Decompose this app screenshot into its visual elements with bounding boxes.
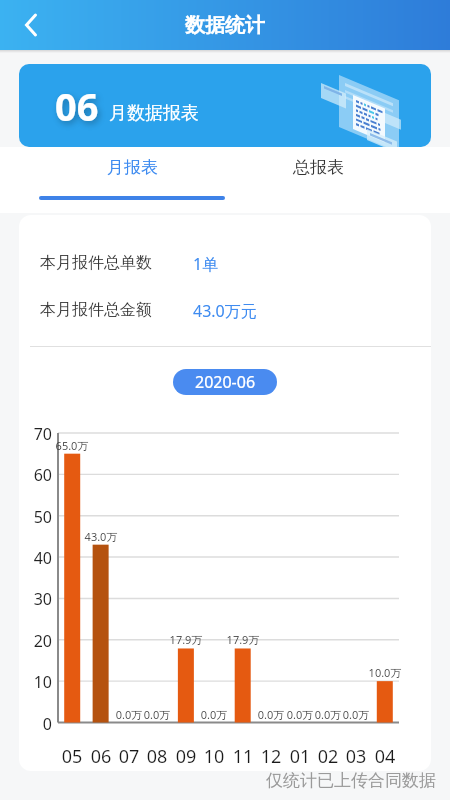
staticText: 2020-06	[195, 371, 256, 393]
staticText: 本月报件总金额	[40, 300, 152, 320]
staticText: 30	[8, 588, 52, 610]
staticText: 40	[8, 547, 52, 569]
staticText: 04	[365, 744, 405, 769]
staticText: 0	[8, 713, 52, 735]
staticText: 03	[336, 744, 376, 769]
staticText: 17.9万	[218, 632, 268, 647]
staticText: 1单	[193, 253, 219, 275]
staticText: 05	[52, 744, 92, 769]
staticText: 本月报件总单数	[40, 253, 152, 273]
staticText: 11	[223, 744, 263, 769]
staticText: 10	[8, 671, 52, 693]
staticText: 07	[109, 744, 149, 769]
staticText: 20	[8, 630, 52, 652]
staticText: 08	[137, 744, 177, 769]
staticText: 0.0万	[331, 707, 381, 722]
staticText: 65.0万	[47, 438, 97, 453]
staticText: 10.0万	[360, 665, 410, 680]
staticText: 17.9万	[161, 632, 211, 647]
staticText: 0.0万	[246, 707, 296, 722]
staticText: 10	[194, 744, 234, 769]
staticText: 0.0万	[303, 707, 353, 722]
staticText: 01	[280, 744, 320, 769]
staticText: 0.0万	[104, 707, 154, 722]
staticText: 0.0万	[132, 707, 182, 722]
staticText: 43.0万元	[193, 300, 257, 322]
staticText: 0.0万	[189, 707, 239, 722]
staticText: 70	[8, 423, 52, 445]
staticText: 06	[81, 744, 121, 769]
staticText: 02	[308, 744, 348, 769]
staticText: 50	[8, 506, 52, 528]
staticText: 12	[251, 744, 291, 769]
staticText: 月报表	[107, 157, 158, 178]
staticText: 总报表	[293, 157, 344, 178]
staticText: 月数据报表	[109, 102, 199, 125]
staticText: 43.0万	[76, 529, 126, 544]
staticText: 09	[166, 744, 206, 769]
button[interactable]: 06	[19, 64, 431, 147]
staticText: 数据统计	[0, 13, 450, 38]
button[interactable]: 2020-06	[173, 369, 277, 395]
staticText: 06	[55, 80, 99, 132]
button[interactable]: 月报表	[39, 147, 225, 213]
staticText: 仅统计已上传合同数据	[0, 770, 436, 791]
staticText: 60	[8, 464, 52, 486]
button[interactable]	[0, 0, 56, 50]
staticText: 0.0万	[275, 707, 325, 722]
button[interactable]: 总报表	[225, 147, 411, 213]
